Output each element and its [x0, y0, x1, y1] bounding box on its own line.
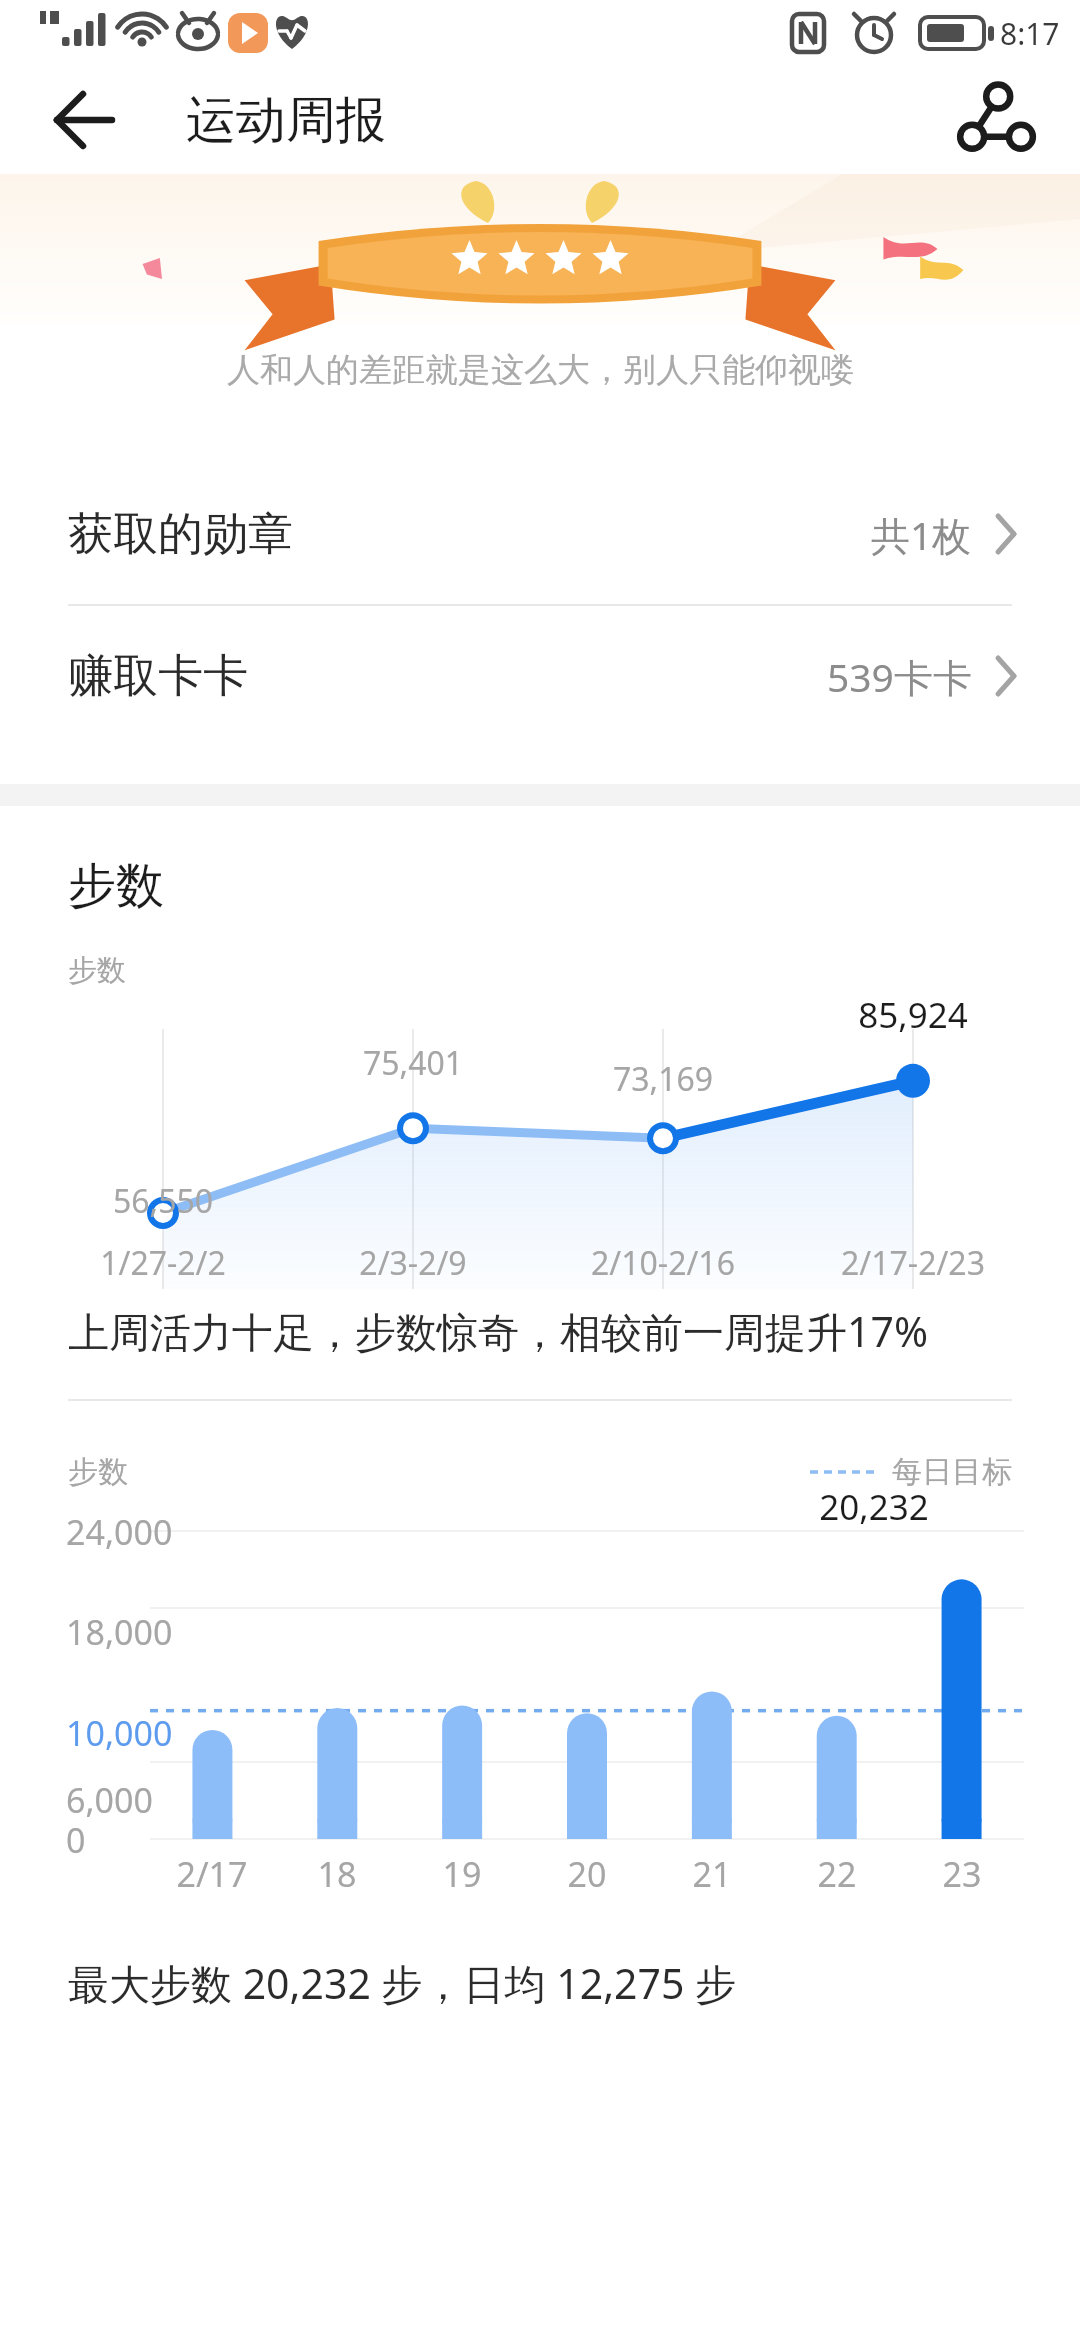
staticText: 20: [517, 1851, 657, 1897]
staticText: 10,000: [66, 1710, 173, 1756]
staticText: 21: [642, 1851, 782, 1897]
staticText: 18: [267, 1851, 407, 1897]
staticText: 85,924: [823, 991, 1003, 1039]
staticText: 2/17: [142, 1851, 282, 1897]
staticText: 步数: [68, 1453, 128, 1491]
staticText: 6,000: [66, 1777, 153, 1823]
staticText: 赚取卡卡: [68, 648, 248, 705]
staticText: 步数: [68, 952, 126, 989]
staticText: 20,232: [774, 1483, 974, 1531]
staticText: 2/17-2/23: [803, 1241, 1023, 1285]
staticText: 75,401: [323, 1041, 503, 1085]
staticText: 上周活力十足，步数惊奇，相较前一周提升17%: [68, 1303, 928, 1359]
staticText: 共1枚: [871, 508, 972, 561]
staticText: 73,169: [573, 1057, 753, 1101]
staticText: 2/3-2/9: [303, 1241, 523, 1285]
staticText: 23: [892, 1851, 1032, 1897]
staticText: 18,000: [66, 1609, 173, 1655]
staticText: 每日目标: [892, 1453, 1012, 1491]
staticText: 24,000: [66, 1509, 173, 1555]
staticText: 人和人的差距就是这么大，别人只能仰视喽: [227, 349, 854, 391]
staticText: 最大步数 20,232 步，日均 12,275 步: [68, 1955, 737, 2011]
staticText: 2/10-2/16: [553, 1241, 773, 1285]
button[interactable]: Back: [44, 80, 124, 160]
staticText: 22: [767, 1851, 907, 1897]
staticText: 获取的勋章: [68, 506, 293, 563]
button[interactable]: Share: [952, 78, 1036, 162]
button[interactable]: 获取的勋章: [0, 464, 1080, 604]
staticText: 539卡卡: [827, 650, 972, 703]
staticText: 19: [392, 1851, 532, 1897]
staticText: 0: [66, 1817, 86, 1863]
staticText: 8:17: [1000, 13, 1060, 54]
staticText: 步数: [68, 856, 164, 916]
button[interactable]: 赚取卡卡: [0, 606, 1080, 746]
staticText: 1/27-2/2: [53, 1241, 273, 1285]
staticText: 运动周报: [186, 89, 386, 152]
staticText: 56,550: [73, 1179, 253, 1223]
